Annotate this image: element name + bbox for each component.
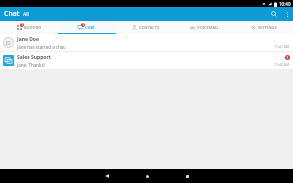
- staticText: Jane: Thanks!: [17, 62, 45, 68]
- staticText: Sales Support: [17, 54, 51, 61]
- button[interactable]: Recent apps: [182, 171, 192, 181]
- staticText: All: [23, 11, 29, 18]
- staticText: 11:41 AM: [274, 44, 290, 49]
- staticText: 10:40: [279, 1, 291, 7]
- button[interactable]: Back: [102, 171, 112, 181]
- button[interactable]: JD: [0, 34, 293, 51]
- staticText: Jane Doe: [17, 36, 39, 43]
- button[interactable]: VOICEMAIL: [175, 21, 234, 34]
- staticText: 1: [286, 55, 289, 60]
- button[interactable]: More options: [281, 8, 293, 20]
- staticText: VOICEMAIL: [197, 25, 219, 30]
- staticText: CONTACTS: [139, 25, 160, 30]
- button[interactable]: 1: [0, 21, 58, 34]
- button[interactable]: SETTINGS: [234, 21, 293, 34]
- staticText: 1: [21, 23, 23, 27]
- button[interactable]: Sales Support: [0, 52, 293, 69]
- staticText: 11:40 AM: [274, 62, 290, 67]
- staticText: SETTINGS: [258, 25, 277, 30]
- staticText: JD: [6, 40, 11, 46]
- staticText: BUDDIES: [24, 25, 42, 30]
- button[interactable]: 1: [58, 21, 116, 34]
- staticText: 1: [82, 23, 84, 27]
- staticText: CHAT: [85, 25, 96, 30]
- staticText: Jane has started a chat.: [17, 44, 67, 50]
- button[interactable]: CONTACTS: [116, 21, 175, 34]
- button[interactable]: Home: [142, 171, 152, 181]
- staticText: Chat: [4, 9, 20, 19]
- button[interactable]: Search: [267, 7, 281, 21]
